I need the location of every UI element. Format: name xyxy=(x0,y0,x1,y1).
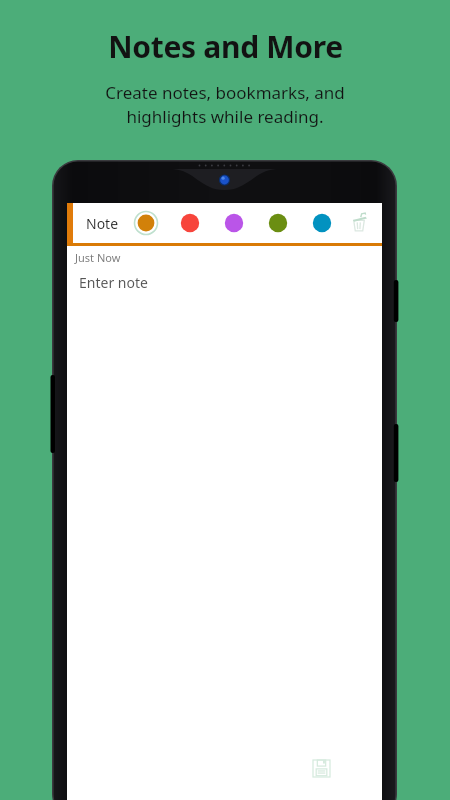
staticText: Enter note xyxy=(79,273,148,292)
button[interactable]: Orange highlight xyxy=(133,210,159,236)
button[interactable]: Note xyxy=(84,210,121,237)
button[interactable]: Save note xyxy=(306,753,336,783)
button[interactable]: Enter note xyxy=(67,273,382,292)
staticText: Create notes, bookmarks, and highlights … xyxy=(105,81,345,128)
button[interactable]: Green highlight xyxy=(265,210,291,236)
button[interactable]: Delete note xyxy=(342,206,376,240)
staticText: Just Now xyxy=(75,250,121,265)
button[interactable]: Blue highlight xyxy=(309,210,335,236)
staticText: Notes and More xyxy=(108,26,343,67)
staticText: Note xyxy=(86,214,119,233)
button[interactable]: Purple highlight xyxy=(221,210,247,236)
button[interactable]: Red highlight xyxy=(177,210,203,236)
